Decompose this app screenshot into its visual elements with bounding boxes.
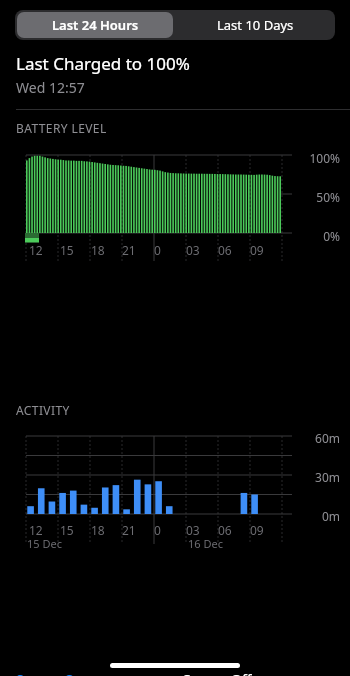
staticText: Last Charged to 100% xyxy=(16,52,190,75)
staticText: 09 xyxy=(250,242,264,258)
staticText: 60m xyxy=(0,430,340,446)
staticText: 18 xyxy=(91,522,105,538)
staticText: 0% xyxy=(0,228,340,244)
staticText: 03 xyxy=(186,242,200,258)
staticText: Last 10 Days xyxy=(217,16,294,34)
staticText: 09 xyxy=(250,522,264,538)
staticText: 06 xyxy=(218,522,232,538)
staticText: 0m xyxy=(0,508,340,524)
staticText: 100% xyxy=(0,150,340,166)
staticText: ACTIVITY xyxy=(16,402,70,418)
staticText: 21 xyxy=(122,242,136,258)
staticText: 0 xyxy=(154,522,161,538)
staticText: Screen On xyxy=(16,670,84,676)
staticText: 15 xyxy=(60,242,74,258)
staticText: 12 xyxy=(29,522,43,538)
staticText: 18 xyxy=(91,242,105,258)
staticText: BATTERY LEVEL xyxy=(16,120,107,136)
button[interactable]: Last 24 Hours xyxy=(17,12,173,38)
staticText: 50% xyxy=(0,189,340,205)
staticText: Last 24 Hours xyxy=(52,16,139,34)
staticText: 12 xyxy=(29,242,43,258)
staticText: 03 xyxy=(186,522,200,538)
staticText: Wed 12:57 xyxy=(16,78,85,97)
staticText: 15 xyxy=(60,522,74,538)
staticText: 21 xyxy=(122,522,136,538)
staticText: 30m xyxy=(0,469,340,485)
staticText: Screen Off xyxy=(183,670,252,676)
button[interactable]: Last 10 Days xyxy=(175,10,335,40)
staticText: 15 Dec xyxy=(27,536,62,551)
staticText: 06 xyxy=(218,242,232,258)
staticText: 0 xyxy=(154,242,161,258)
staticText: 16 Dec xyxy=(188,536,223,551)
